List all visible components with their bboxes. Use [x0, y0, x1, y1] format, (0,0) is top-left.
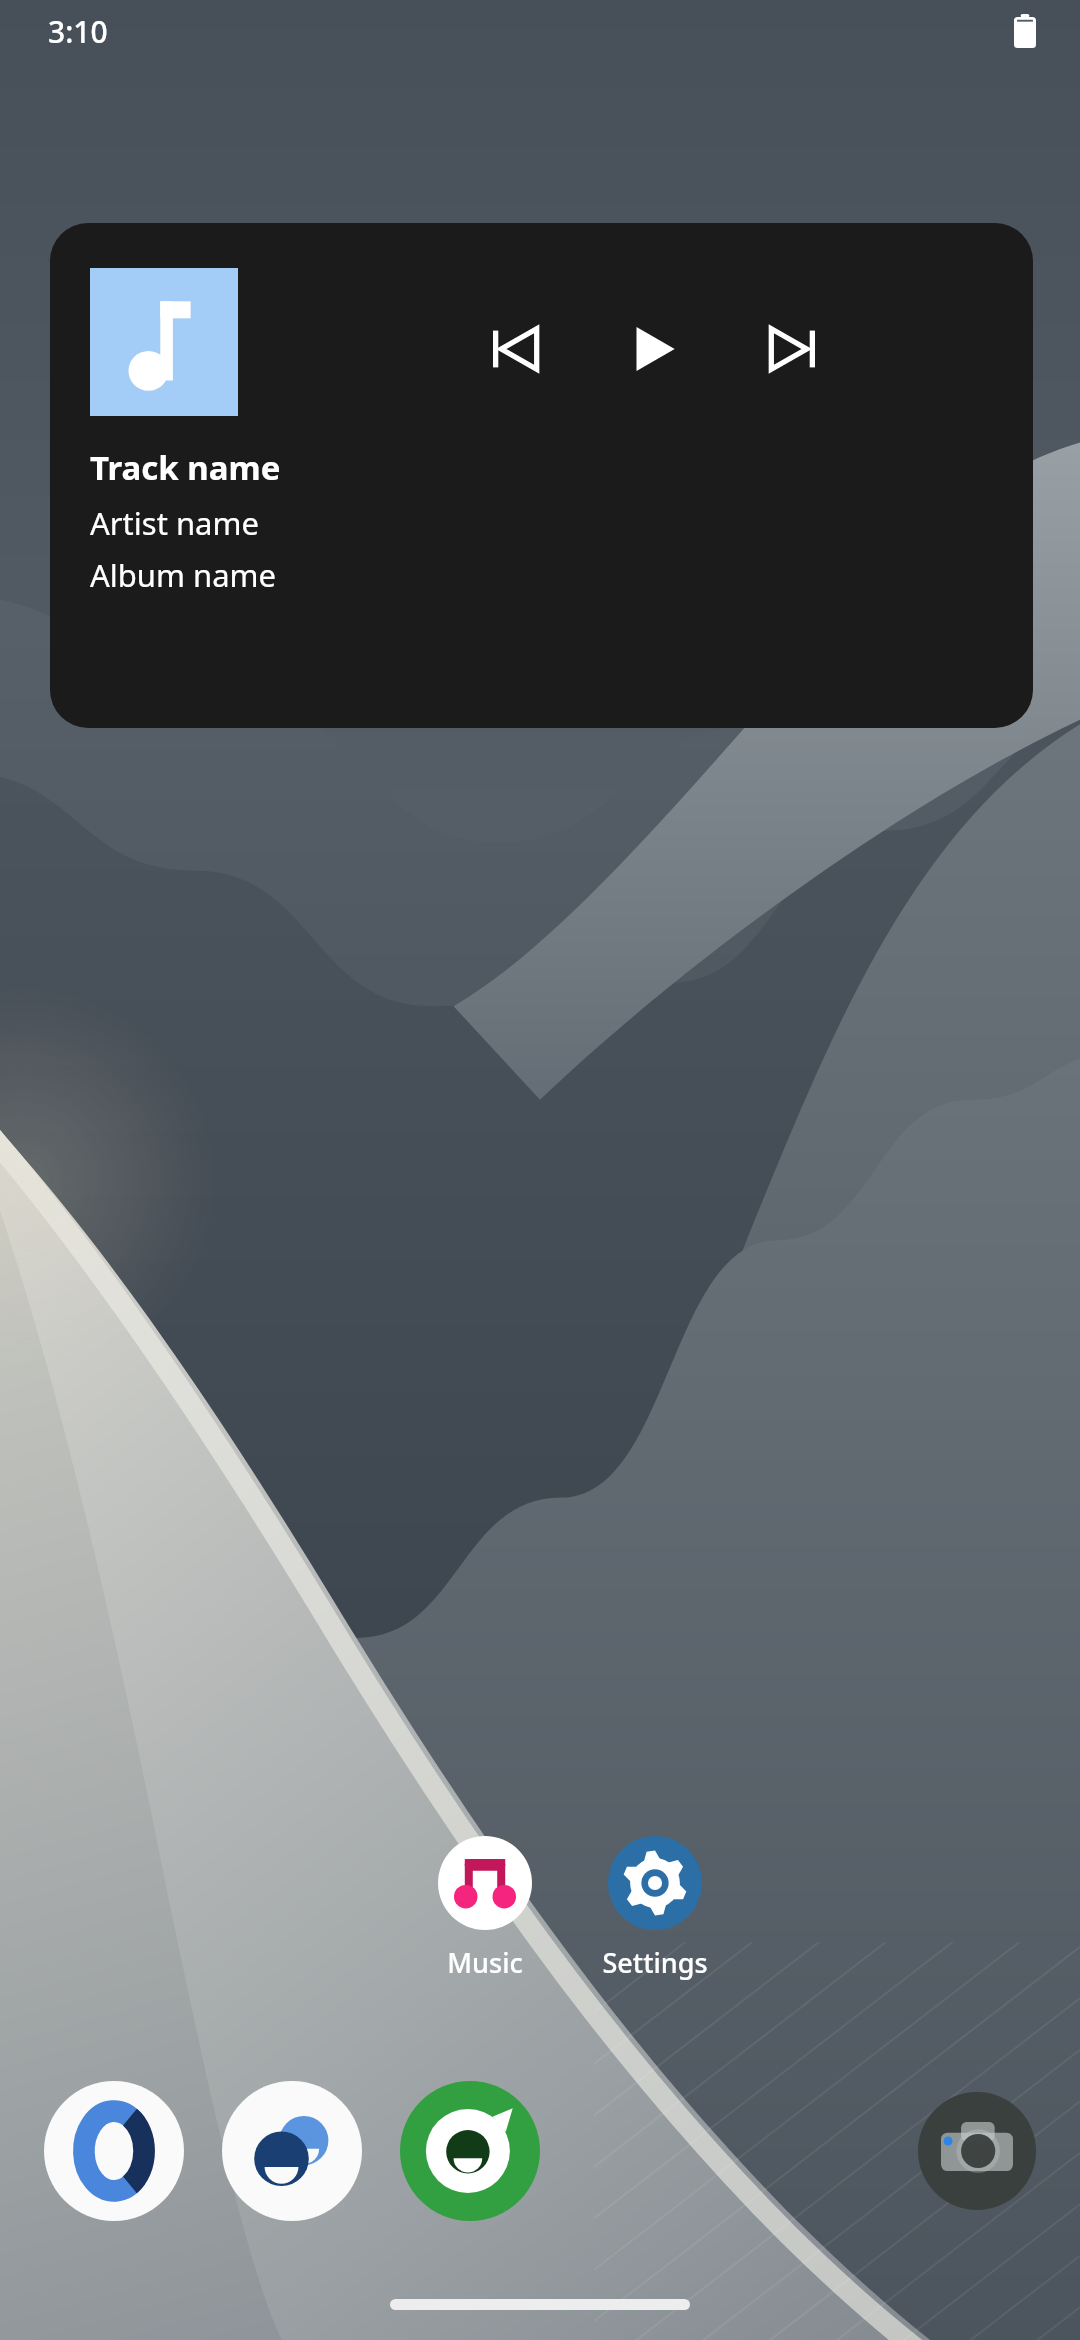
staticText: Track name — [90, 445, 281, 490]
staticText: Album name — [90, 554, 277, 596]
button[interactable]: Previous track — [50, 223, 1033, 728]
button[interactable]: Settings — [570, 1836, 740, 1981]
button[interactable]: Previous track — [480, 313, 552, 385]
staticText: Artist name — [90, 502, 259, 544]
button[interactable]: Phone — [44, 2081, 184, 2221]
staticText: Settings — [602, 1944, 708, 1981]
button[interactable]: Messages — [400, 2081, 540, 2221]
button[interactable]: Next track — [756, 313, 828, 385]
staticText: Music — [447, 1944, 523, 1981]
staticText: 3:10 — [48, 11, 108, 52]
button[interactable]: Camera — [918, 2092, 1036, 2210]
button[interactable]: Music — [400, 1836, 570, 1981]
button[interactable]: Play — [618, 313, 690, 385]
button[interactable]: Contacts — [222, 2081, 362, 2221]
